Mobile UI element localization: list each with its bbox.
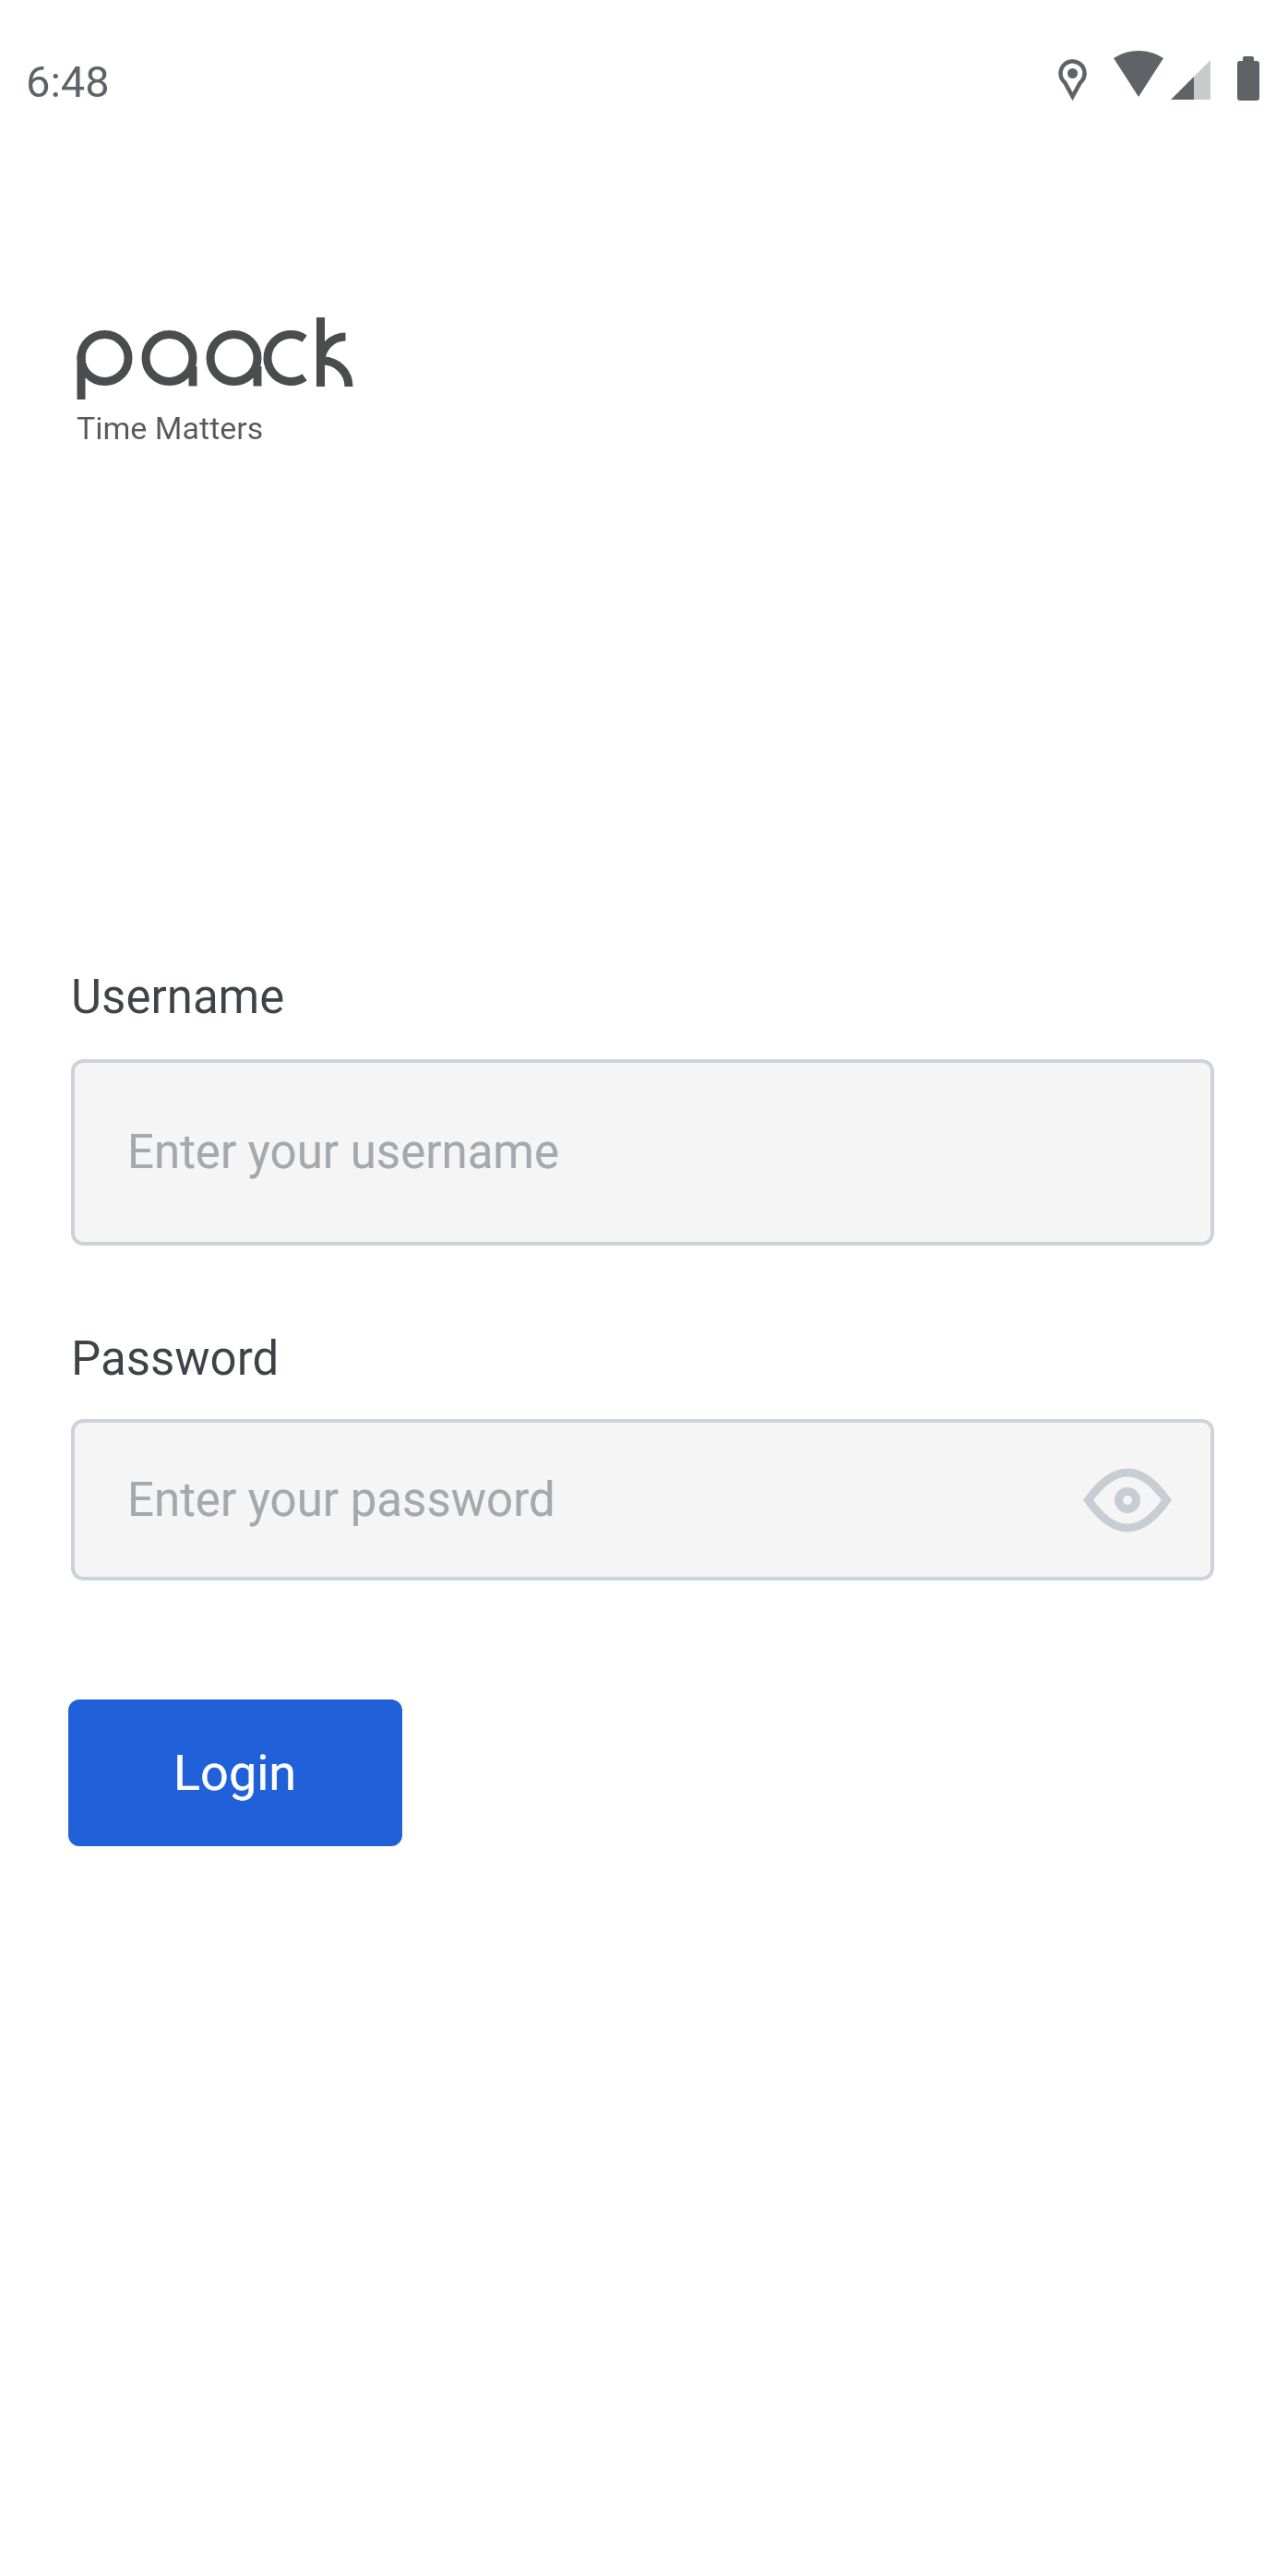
staticText: Username xyxy=(71,970,285,1025)
button[interactable]: Enter your password xyxy=(71,1419,1214,1580)
staticText: Enter your password xyxy=(127,1473,555,1528)
staticText: Time Matters xyxy=(77,410,264,447)
button[interactable]: Enter your username xyxy=(71,1059,1214,1246)
staticText: Login xyxy=(173,1744,297,1802)
button[interactable]: Login xyxy=(68,1699,402,1846)
button[interactable] xyxy=(1086,1470,1169,1531)
staticText: Enter your username xyxy=(127,1125,560,1180)
staticText: Password xyxy=(71,1331,280,1387)
staticText: 6:48 xyxy=(26,56,110,107)
